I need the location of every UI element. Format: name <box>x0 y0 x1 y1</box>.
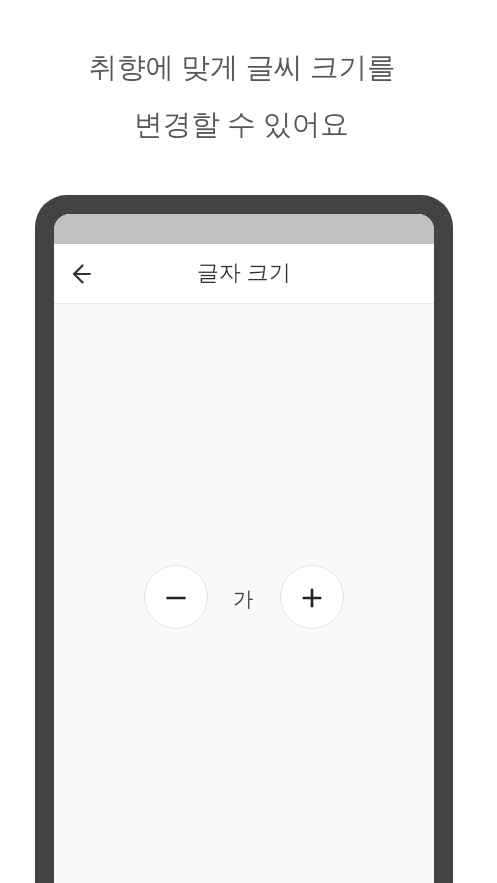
button[interactable]: 크게 <box>280 565 344 629</box>
staticText: 가 <box>233 586 254 612</box>
button[interactable]: 뒤로 <box>60 252 104 296</box>
button[interactable]: 작게 <box>144 565 208 629</box>
staticText: 취향에 맞게 글씨 크기를 <box>88 47 396 86</box>
staticText: 변경할 수 있어요 <box>134 104 349 143</box>
staticText: 글자 크기 <box>197 256 291 286</box>
